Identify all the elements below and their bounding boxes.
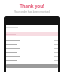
staticText: Your order has been received [0, 10, 64, 14]
button[interactable] [6, 58, 58, 62]
button[interactable] [6, 46, 58, 50]
staticText: Thank you! [0, 3, 64, 9]
button[interactable] [6, 50, 58, 54]
button[interactable] [6, 38, 58, 42]
button[interactable] [6, 54, 58, 58]
button[interactable] [6, 64, 58, 68]
button[interactable] [6, 42, 58, 46]
